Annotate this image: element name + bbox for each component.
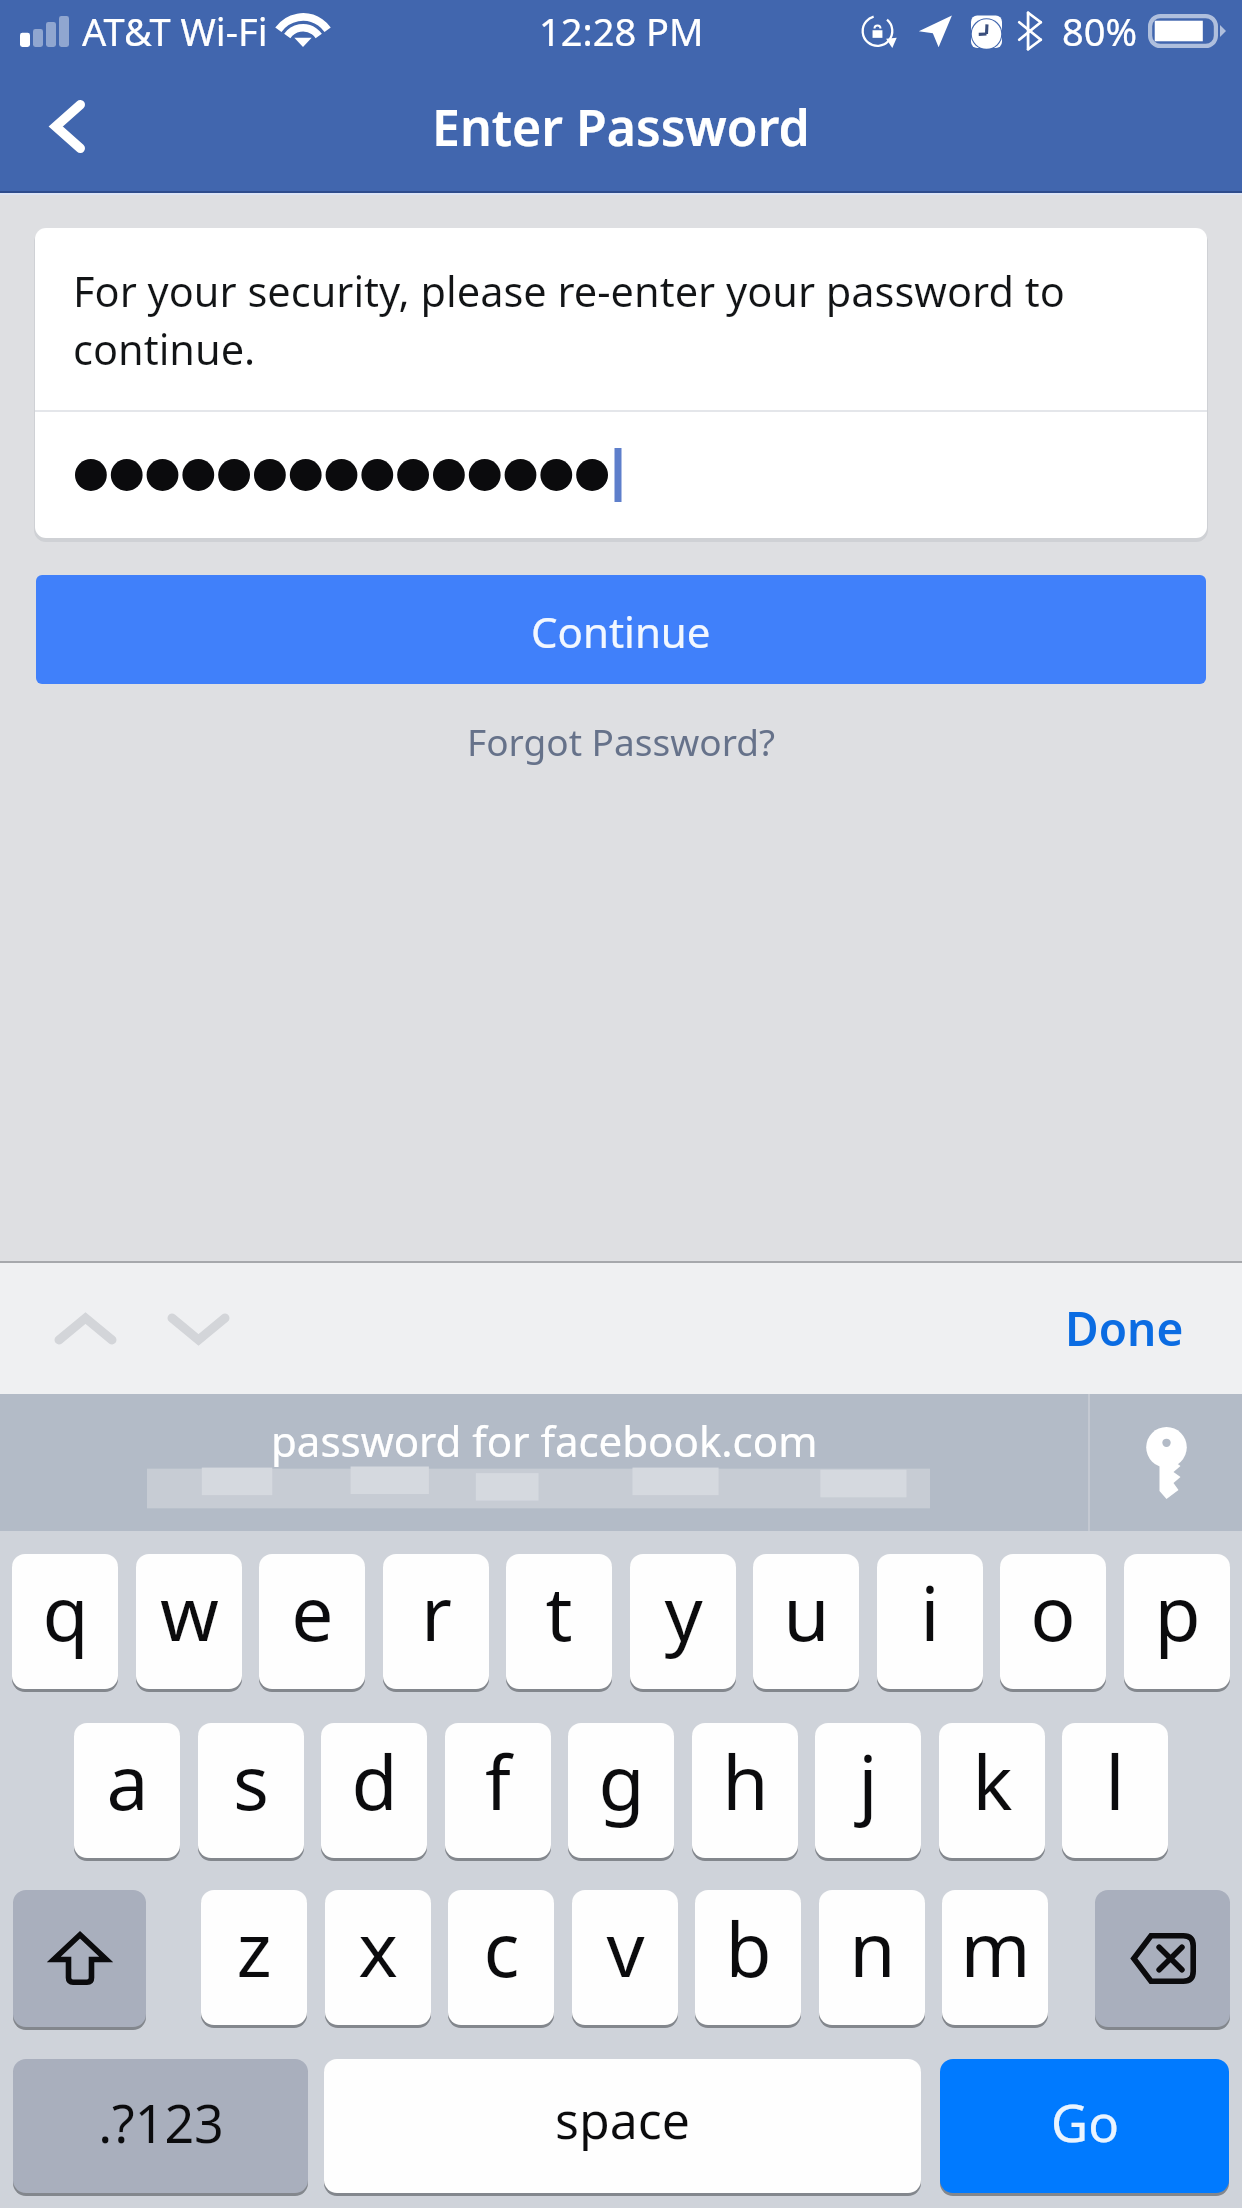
button[interactable]: d <box>321 1723 427 1858</box>
button[interactable]: q <box>12 1554 118 1689</box>
staticText: a <box>106 1730 149 1832</box>
button[interactable]: Shift <box>13 1890 146 2027</box>
staticText: space <box>555 2086 690 2154</box>
button[interactable]: v <box>572 1890 678 2025</box>
button[interactable]: l <box>1062 1723 1168 1858</box>
button[interactable]: w <box>136 1554 242 1689</box>
staticText: g <box>598 1730 645 1832</box>
button[interactable]: h <box>692 1723 798 1858</box>
staticText: w <box>160 1561 219 1663</box>
button[interactable]: m <box>942 1890 1048 2025</box>
staticText: y <box>664 1561 703 1663</box>
staticText: x <box>358 1897 398 1999</box>
staticText: c <box>483 1897 520 1999</box>
staticText: b <box>725 1897 772 1999</box>
button[interactable]: a <box>74 1723 180 1858</box>
staticText: t <box>545 1561 573 1663</box>
staticText: q <box>42 1561 89 1663</box>
button[interactable]: j <box>815 1723 921 1858</box>
staticText: f <box>485 1730 511 1832</box>
staticText: j <box>858 1730 878 1832</box>
staticText: m <box>960 1897 1031 1999</box>
button[interactable]: z <box>201 1890 307 2025</box>
button[interactable]: e <box>259 1554 365 1689</box>
button[interactable]: space <box>324 2059 921 2193</box>
button[interactable]: r <box>383 1554 489 1689</box>
staticText: n <box>849 1897 896 1999</box>
staticText: Enter Password <box>432 93 810 161</box>
staticText: h <box>722 1730 769 1832</box>
button[interactable]: password for facebook.com <box>0 1394 1088 1531</box>
staticText: u <box>783 1561 830 1663</box>
staticText: Forgot Password? <box>467 716 776 766</box>
staticText: 80% <box>1062 5 1138 57</box>
button[interactable]: Continue <box>36 575 1206 684</box>
button[interactable] <box>35 412 1207 538</box>
staticText: password for facebook.com <box>271 1412 818 1469</box>
staticText: o <box>1030 1561 1076 1663</box>
staticText: For your security, please re-enter your … <box>73 263 1185 377</box>
staticText: d <box>351 1730 398 1832</box>
button[interactable]: Done <box>1065 1263 1184 1394</box>
button[interactable]: b <box>695 1890 801 2025</box>
button[interactable]: g <box>568 1723 674 1858</box>
button[interactable]: .?123 <box>13 2059 308 2193</box>
button[interactable]: Forgot Password? <box>0 698 1242 788</box>
button[interactable]: u <box>753 1554 859 1689</box>
staticText: i <box>920 1561 940 1663</box>
button[interactable]: n <box>819 1890 925 2025</box>
staticText: Go <box>1051 2087 1119 2156</box>
button[interactable]: Go <box>940 2059 1229 2193</box>
button[interactable]: t <box>506 1554 612 1689</box>
button[interactable]: c <box>448 1890 554 2025</box>
button[interactable]: Next field <box>142 1269 255 1389</box>
staticText: e <box>291 1561 334 1663</box>
button[interactable]: Previous field <box>29 1269 142 1389</box>
staticText: Continue <box>531 603 711 660</box>
staticText: r <box>421 1561 452 1663</box>
staticText: AT&T Wi-Fi <box>82 5 268 57</box>
button[interactable]: p <box>1124 1554 1230 1689</box>
button[interactable]: i <box>877 1554 983 1689</box>
staticText: .?123 <box>98 2087 224 2158</box>
button[interactable]: k <box>939 1723 1045 1858</box>
button[interactable]: Backspace <box>1095 1890 1230 2027</box>
staticText: z <box>236 1897 272 1999</box>
button[interactable]: x <box>325 1890 431 2025</box>
button[interactable]: s <box>198 1723 304 1858</box>
button[interactable]: y <box>630 1554 736 1689</box>
button[interactable]: f <box>445 1723 551 1858</box>
button[interactable]: o <box>1000 1554 1106 1689</box>
button[interactable]: Back <box>0 62 136 191</box>
staticText: v <box>606 1897 645 1999</box>
staticText: p <box>1154 1561 1201 1663</box>
staticText: k <box>972 1730 1013 1832</box>
staticText: l <box>1105 1730 1125 1832</box>
staticText: Done <box>1065 1297 1184 1360</box>
button[interactable]: Passwords <box>1090 1394 1242 1531</box>
staticText: 12:28 PM <box>539 5 704 57</box>
staticText: s <box>233 1730 269 1832</box>
